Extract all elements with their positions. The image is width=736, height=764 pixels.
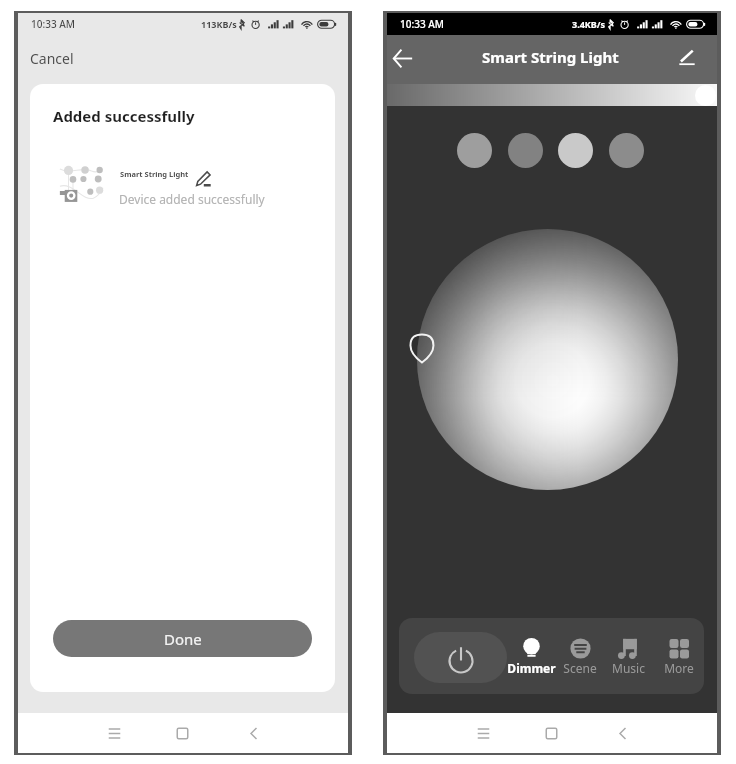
- button[interactable]: Home: [172, 723, 193, 744]
- staticText: Device added successfully: [119, 191, 265, 207]
- button[interactable]: Colour preset 2: [508, 133, 543, 168]
- button[interactable]: Scene: [553, 632, 607, 686]
- button[interactable]: Power: [414, 632, 507, 683]
- staticText: Dimmer: [507, 660, 556, 676]
- button[interactable]: Recent apps: [473, 723, 494, 744]
- staticText: Cancel: [30, 49, 74, 68]
- button[interactable]: Music: [601, 632, 655, 686]
- staticText: 10:33 AM: [31, 17, 75, 31]
- staticText: Smart String Light: [120, 169, 189, 179]
- staticText: 113KB/s: [201, 18, 237, 30]
- button[interactable]: Colour preset 3: [558, 133, 593, 168]
- button[interactable]: Rename device: [196, 171, 211, 186]
- staticText: Added successfully: [53, 106, 195, 126]
- staticText: 3.4KB/s: [572, 18, 606, 30]
- staticText: Done: [164, 629, 202, 649]
- button[interactable]: Back: [242, 723, 263, 744]
- button[interactable]: Home: [541, 723, 562, 744]
- button[interactable]: More: [652, 632, 704, 686]
- button[interactable]: Cancel: [26, 45, 78, 72]
- staticText: Smart String Light: [482, 47, 619, 67]
- button[interactable]: Colour preset 4: [609, 133, 644, 168]
- staticText: Music: [612, 660, 645, 676]
- staticText: More: [664, 660, 694, 676]
- button[interactable]: Back: [392, 48, 413, 69]
- button[interactable]: Recent apps: [104, 723, 125, 744]
- button[interactable]: Dimmer: [504, 632, 558, 686]
- button[interactable]: Done: [53, 620, 312, 657]
- button[interactable]: Colour preset 1: [457, 133, 492, 168]
- button[interactable]: Edit name: [679, 49, 695, 65]
- staticText: 10:33 AM: [400, 17, 444, 31]
- button[interactable]: Back: [611, 723, 632, 744]
- staticText: Scene: [563, 660, 597, 676]
- button[interactable]: Brightness: [387, 84, 717, 106]
